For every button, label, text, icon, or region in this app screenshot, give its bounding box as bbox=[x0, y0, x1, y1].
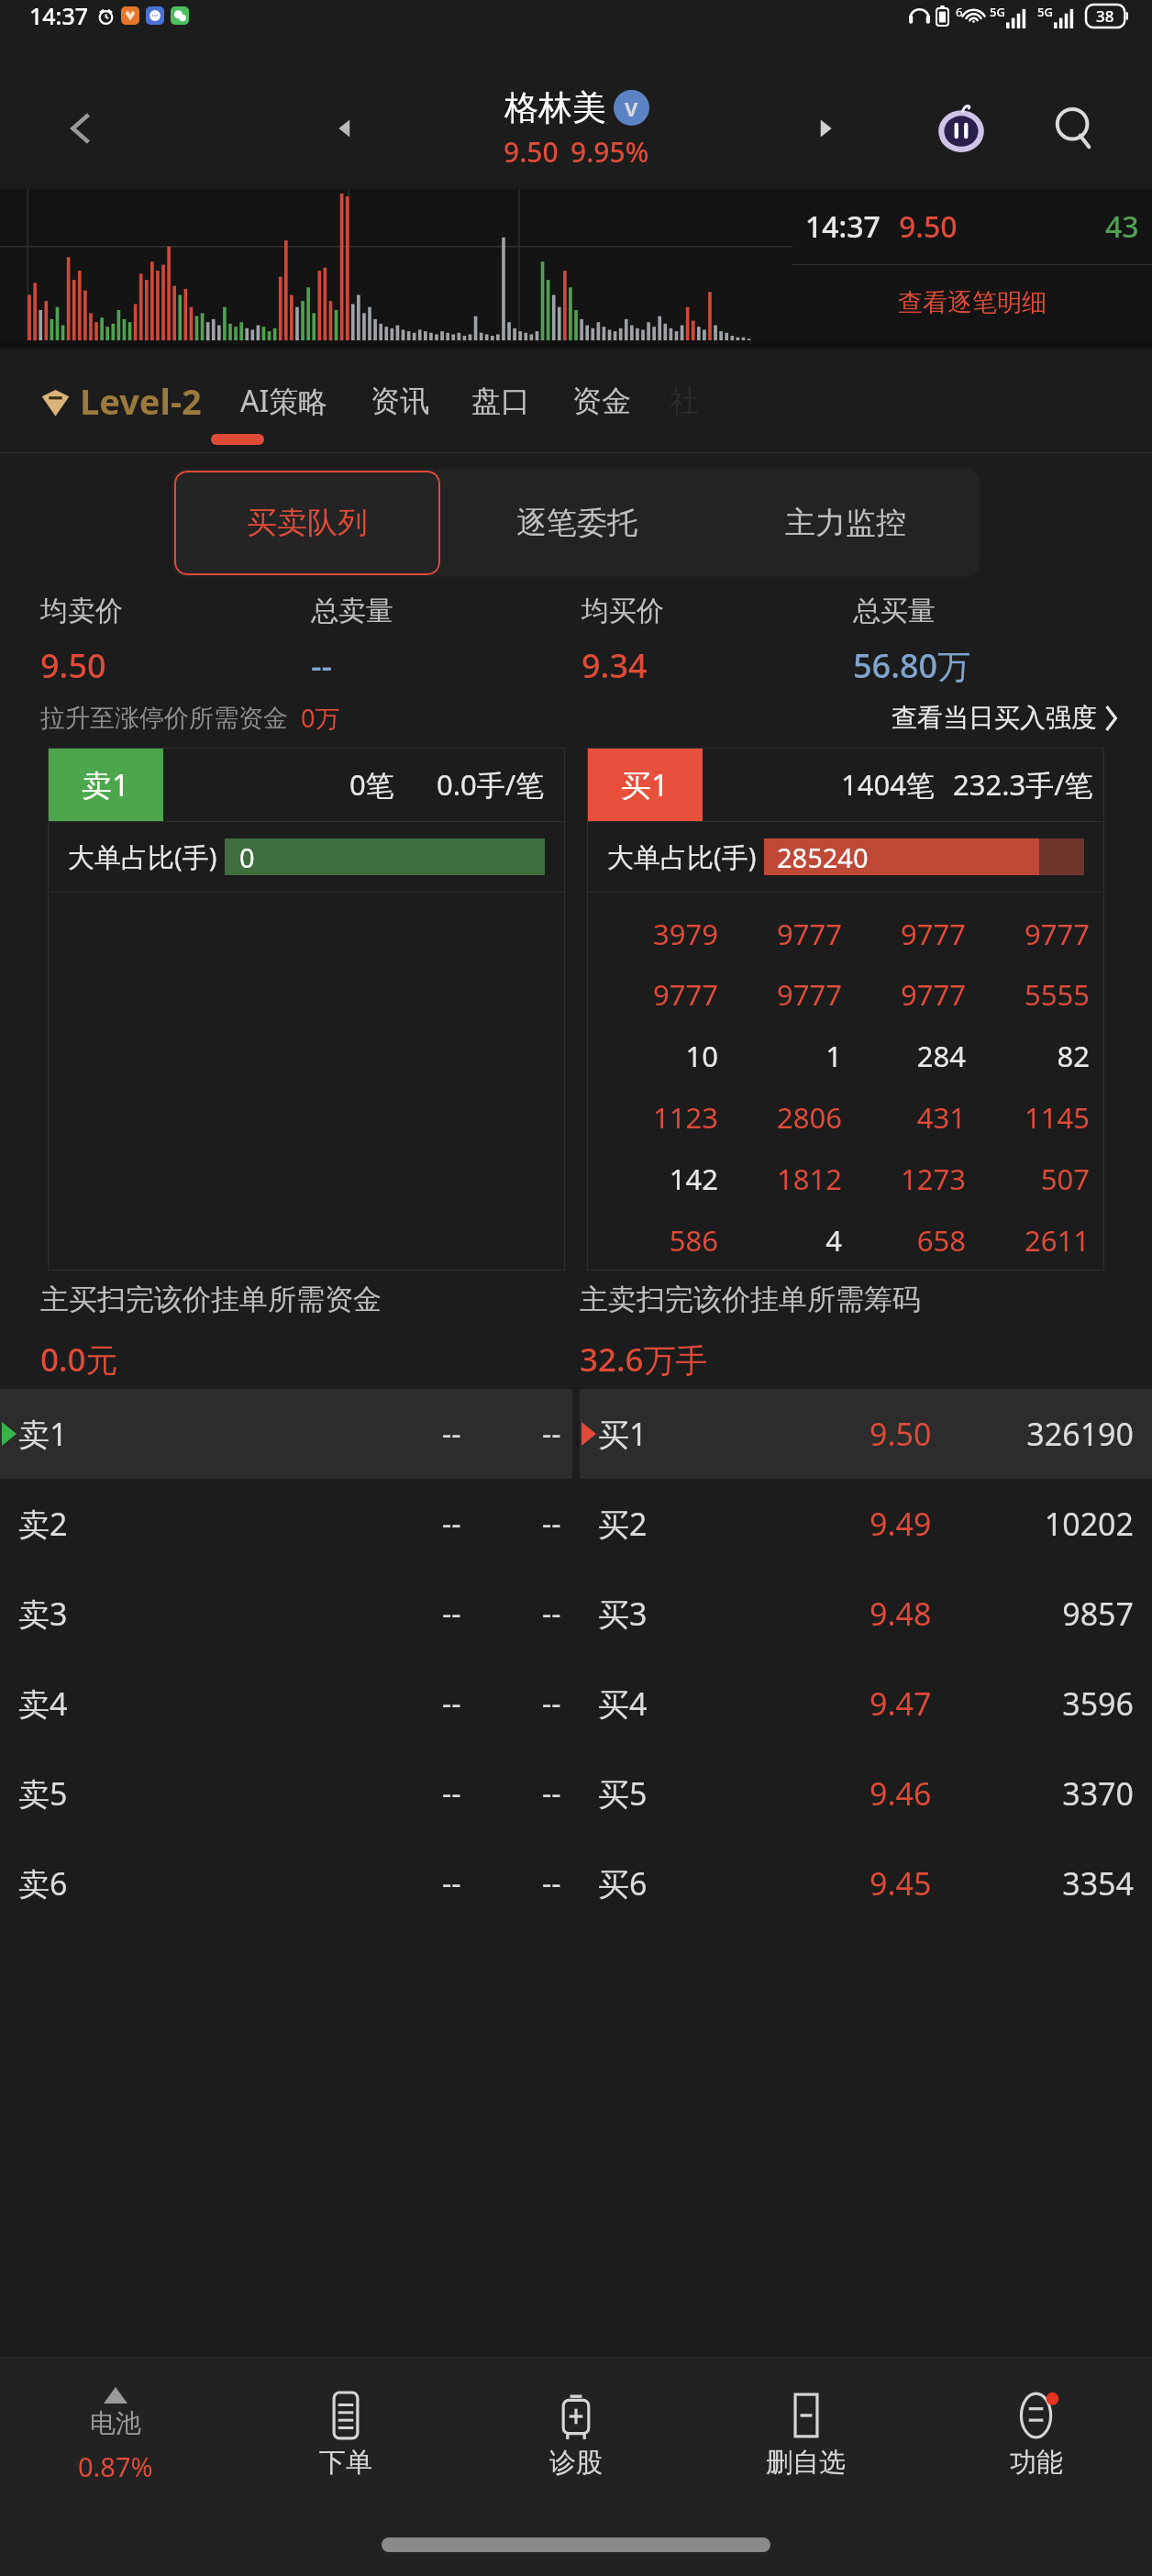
staticText: 0 bbox=[239, 839, 255, 875]
staticText: 9.46 bbox=[870, 1772, 932, 1815]
button[interactable]: Next stock bbox=[800, 103, 851, 154]
staticText: -- bbox=[442, 1504, 461, 1544]
staticText: 5555 bbox=[1025, 975, 1090, 1014]
button[interactable]: AI assistant bbox=[925, 92, 998, 165]
staticText: 284 bbox=[916, 1037, 966, 1075]
staticText: -- bbox=[542, 1414, 561, 1454]
staticText: 9777 bbox=[901, 915, 966, 953]
staticText: 社 bbox=[670, 383, 699, 419]
staticText: 43 bbox=[1105, 206, 1139, 247]
staticText: 买1 bbox=[598, 1413, 648, 1455]
staticText: 9777 bbox=[653, 975, 718, 1014]
button[interactable]: 格林美 bbox=[504, 86, 649, 171]
staticText: 下单 bbox=[319, 2446, 372, 2480]
staticText: 买卖队列 bbox=[247, 504, 368, 542]
button[interactable]: 电池 bbox=[0, 2387, 230, 2484]
staticText: 0笔 bbox=[349, 765, 394, 804]
staticText: 2806 bbox=[777, 1098, 842, 1137]
staticText: 3370 bbox=[1062, 1772, 1134, 1815]
button[interactable]: Level-2 bbox=[40, 377, 202, 425]
staticText: 功能 bbox=[1010, 2446, 1063, 2480]
button[interactable]: 删自选 bbox=[691, 2393, 921, 2480]
staticText: 卖1 bbox=[18, 1413, 68, 1455]
button[interactable]: Back bbox=[53, 100, 110, 157]
staticText: 82 bbox=[1057, 1037, 1090, 1075]
staticText: 买1 bbox=[621, 764, 669, 805]
staticText: 大单占比(手) bbox=[607, 838, 757, 875]
staticText: 14:37 bbox=[805, 206, 881, 247]
staticText: 658 bbox=[916, 1221, 966, 1260]
staticText: 32.6万手 bbox=[580, 1338, 708, 1382]
staticText: 买6 bbox=[598, 1862, 648, 1904]
staticText: 0.87% bbox=[78, 2448, 153, 2484]
staticText: 主买扫完该价挂单所需资金 bbox=[40, 1282, 382, 1317]
staticText: 431 bbox=[916, 1098, 966, 1137]
button[interactable]: 14:37 bbox=[792, 189, 1152, 340]
staticText: 查看逐笔明细 bbox=[898, 287, 1047, 318]
staticText: -- bbox=[542, 1504, 561, 1544]
staticText: 1123 bbox=[653, 1098, 718, 1137]
button[interactable]: 资金 bbox=[572, 383, 631, 419]
staticText: 232.3手/笔 bbox=[953, 765, 1093, 804]
button[interactable]: AI策略 bbox=[240, 381, 328, 421]
staticText: 卖3 bbox=[18, 1593, 68, 1635]
staticText: -- bbox=[542, 1863, 561, 1904]
staticText: 1273 bbox=[901, 1160, 966, 1198]
staticText: 326190 bbox=[1026, 1413, 1134, 1455]
staticText: 285240 bbox=[777, 839, 869, 875]
staticText: -- bbox=[542, 1593, 561, 1634]
staticText: 14:37 bbox=[29, 0, 89, 31]
staticText: 507 bbox=[1040, 1160, 1090, 1198]
staticText: 4 bbox=[825, 1221, 842, 1260]
staticText: 0万 bbox=[301, 701, 340, 735]
button[interactable]: 卖4 bbox=[0, 1659, 1152, 1749]
button[interactable]: Previous stock bbox=[319, 103, 371, 154]
staticText: 逐笔委托 bbox=[516, 504, 637, 542]
staticText: 查看当日买入强度 bbox=[892, 702, 1097, 734]
staticText: Level-2 bbox=[80, 377, 202, 425]
staticText: 电池 bbox=[90, 2407, 141, 2439]
button[interactable]: 卖2 bbox=[0, 1479, 1152, 1569]
button[interactable]: 诊股 bbox=[460, 2393, 691, 2480]
staticText: 9.95% bbox=[570, 133, 649, 171]
staticText: -- bbox=[442, 1593, 461, 1634]
button[interactable]: 盘口 bbox=[471, 383, 530, 419]
staticText: 卖5 bbox=[18, 1772, 68, 1815]
button[interactable]: 资讯 bbox=[371, 383, 429, 419]
button[interactable]: 功能 bbox=[921, 2393, 1152, 2480]
button[interactable]: 逐笔委托 bbox=[442, 469, 711, 577]
staticText: 格林美 bbox=[504, 86, 606, 129]
staticText: 142 bbox=[669, 1160, 718, 1198]
button[interactable]: 卖1 bbox=[0, 1389, 1152, 1479]
button[interactable]: 卖5 bbox=[0, 1749, 1152, 1838]
staticText: 586 bbox=[669, 1221, 718, 1260]
staticText: 9.50 bbox=[899, 206, 958, 247]
staticText: 9.50 bbox=[870, 1413, 932, 1455]
button[interactable]: 买1 bbox=[587, 748, 1104, 1271]
staticText: 2611 bbox=[1025, 1221, 1090, 1260]
button[interactable]: 买卖队列 bbox=[174, 471, 440, 575]
staticText: 买3 bbox=[598, 1593, 648, 1635]
button[interactable]: 卖6 bbox=[0, 1838, 1152, 1928]
button[interactable]: 卖1 bbox=[48, 748, 565, 1271]
staticText: 均买价 bbox=[582, 594, 664, 628]
staticText: 9.48 bbox=[870, 1593, 932, 1635]
staticText: 3979 bbox=[653, 915, 718, 953]
button[interactable]: 主力监控 bbox=[711, 469, 980, 577]
button[interactable]: 查看当日买入强度 bbox=[892, 702, 1119, 734]
staticText: -- bbox=[442, 1414, 461, 1454]
staticText: 0.0手/笔 bbox=[437, 765, 545, 804]
staticText: 10202 bbox=[1044, 1503, 1134, 1545]
staticText: 1145 bbox=[1025, 1098, 1090, 1137]
staticText: 主力监控 bbox=[785, 504, 906, 542]
staticText: 诊股 bbox=[549, 2446, 603, 2480]
staticText: 5G bbox=[1037, 4, 1053, 20]
button[interactable]: Search bbox=[1040, 94, 1110, 163]
staticText: 9777 bbox=[1025, 915, 1090, 953]
staticText: 1812 bbox=[777, 1160, 842, 1198]
button[interactable]: 下单 bbox=[230, 2393, 460, 2480]
staticText: -- bbox=[442, 1863, 461, 1904]
staticText: 0.0元 bbox=[40, 1338, 118, 1382]
button[interactable]: 卖3 bbox=[0, 1569, 1152, 1659]
staticText: -- bbox=[542, 1683, 561, 1724]
